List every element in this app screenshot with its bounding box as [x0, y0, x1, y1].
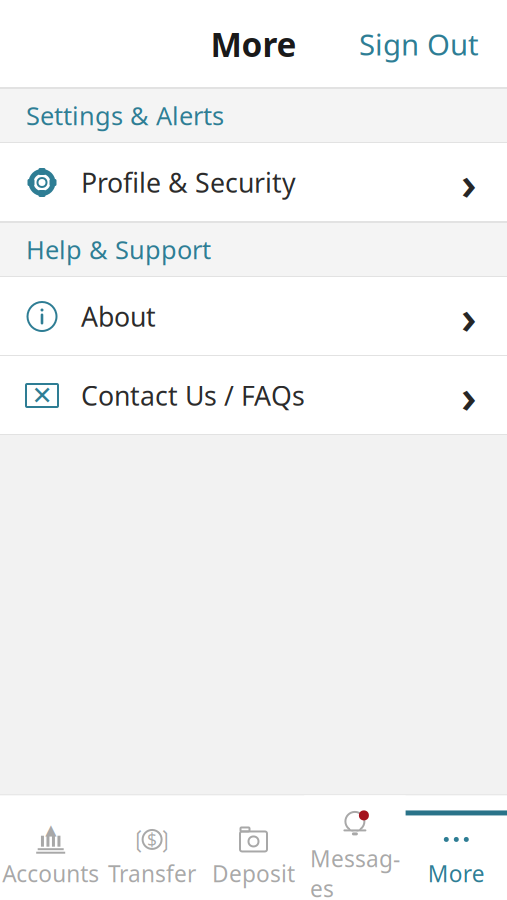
- staticText: Deposit: [212, 858, 295, 888]
- button[interactable]: $: [101, 810, 203, 900]
- staticText: Settings & Alerts: [26, 99, 224, 132]
- staticText: Messages: [310, 843, 400, 900]
- staticText: ✕: [31, 381, 52, 410]
- staticText: More: [428, 858, 485, 888]
- staticText: ›: [461, 152, 477, 213]
- staticText: ›: [461, 365, 477, 426]
- button[interactable]: ▲: [0, 810, 101, 900]
- staticText: Accounts: [2, 858, 99, 888]
- button[interactable]: About: [0, 277, 507, 356]
- staticText: About: [81, 299, 156, 334]
- staticText: ❳: [156, 827, 175, 852]
- button[interactable]: Sign Out: [347, 14, 491, 73]
- staticText: ▲: [45, 821, 56, 838]
- staticText: ›: [461, 286, 477, 347]
- staticText: ❲: [129, 827, 148, 852]
- button[interactable]: More: [406, 810, 507, 900]
- button[interactable]: ✕: [0, 356, 507, 435]
- button[interactable]: Messages: [304, 795, 406, 900]
- button[interactable]: Deposit: [203, 810, 304, 900]
- staticText: Help & Support: [26, 233, 211, 266]
- staticText: Sign Out: [359, 24, 479, 63]
- staticText: Contact Us / FAQs: [81, 378, 305, 413]
- staticText: Transfer: [108, 858, 196, 888]
- staticText: $: [147, 828, 157, 851]
- staticText: Profile & Security: [81, 165, 296, 200]
- button[interactable]: Profile & Security: [0, 143, 507, 222]
- staticText: More: [210, 22, 296, 66]
